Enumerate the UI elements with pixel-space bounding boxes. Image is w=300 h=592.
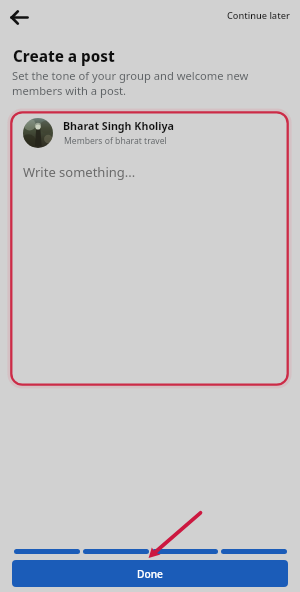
staticText: Members of bharat travel [64,135,167,147]
staticText: Set the tone of your group and welcome n… [12,68,249,98]
staticText: Create a post [13,46,115,67]
staticText: Continue later [227,9,290,22]
button[interactable]: Bharat Singh Kholiya [10,111,289,386]
staticText: Bharat Singh Kholiya [63,119,174,134]
button[interactable]: Done [12,560,288,587]
button[interactable]: Back [6,4,32,30]
button[interactable]: Step progress [152,549,218,554]
staticText: Write something... [23,163,136,181]
button[interactable]: Step progress [221,549,287,554]
button[interactable]: Step progress [14,549,80,554]
staticText: Done [137,567,163,581]
button[interactable]: Continue later [216,0,300,31]
button[interactable]: Step progress [83,549,149,554]
